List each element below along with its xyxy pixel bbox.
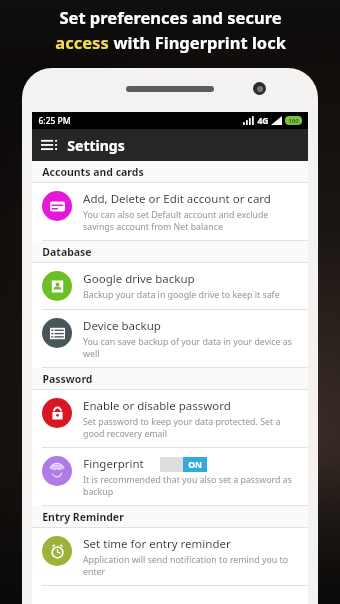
staticText: Set password to keep your data protected… xyxy=(83,416,300,439)
staticText: You can save backup of your data in your… xyxy=(83,336,300,359)
button[interactable]: Fingerprint xyxy=(32,448,308,506)
button[interactable]: Enable or disable password xyxy=(32,390,308,448)
staticText: Entry Reminder xyxy=(42,510,124,524)
staticText: Accounts and cards xyxy=(42,165,144,179)
staticText: Set preferences and secure xyxy=(59,6,282,28)
staticText: access xyxy=(55,31,109,53)
button[interactable]: Device backup xyxy=(32,310,308,368)
staticText: Settings xyxy=(67,136,125,155)
staticText: Enable or disable password xyxy=(83,398,231,414)
button[interactable]: Fingerprint toggle, on xyxy=(160,457,207,472)
staticText: Database xyxy=(42,245,92,259)
staticText: with Fingerprint lock xyxy=(109,31,286,53)
staticText: Fingerprint xyxy=(83,456,144,472)
staticText: Backup your data in google drive to keep… xyxy=(83,289,280,301)
button[interactable]: Google drive backup xyxy=(32,263,308,310)
staticText: ON xyxy=(188,459,202,471)
staticText: Add, Delete or Edit account or card xyxy=(83,191,271,207)
button[interactable]: Add, Delete or Edit account or card xyxy=(32,183,308,241)
staticText: 100 xyxy=(288,117,299,125)
staticText: 6:25 PM xyxy=(38,115,71,127)
staticText: 4G xyxy=(257,115,269,127)
staticText: Device backup xyxy=(83,318,161,334)
button[interactable]: Open navigation menu xyxy=(39,135,59,155)
button[interactable]: Set time for entry reminder xyxy=(32,528,308,586)
staticText: Set time for entry reminder xyxy=(83,536,231,552)
staticText: It is recommended that you also set a pa… xyxy=(83,474,300,497)
staticText: Application will send notification to re… xyxy=(83,554,300,577)
button[interactable]: Open navigation menu xyxy=(32,129,308,161)
staticText: Google drive backup xyxy=(83,271,195,287)
staticText: You can also set Default account and exc… xyxy=(83,209,300,232)
staticText: Password xyxy=(42,372,93,386)
